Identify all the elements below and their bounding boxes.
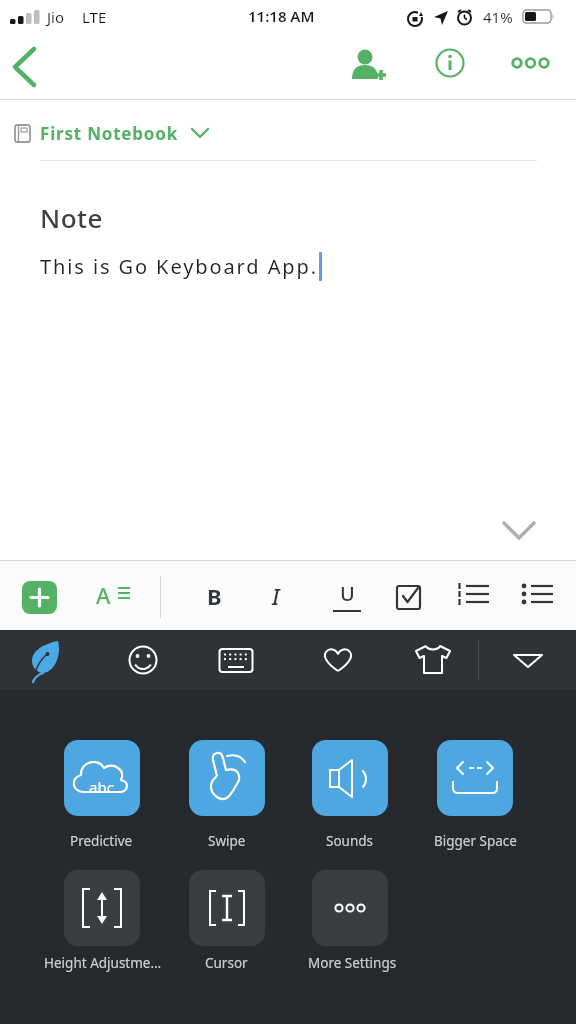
staticText: Predictive [70, 832, 133, 850]
button[interactable]: B [196, 576, 232, 616]
staticText: First Notebook [40, 122, 179, 145]
staticText: 41% [483, 7, 513, 27]
staticText: Swipe [208, 832, 246, 850]
button[interactable] [22, 581, 57, 614]
staticText: Note [40, 200, 103, 235]
staticText: I [272, 581, 280, 611]
button[interactable] [494, 511, 544, 551]
button[interactable]: A [92, 578, 136, 616]
button[interactable] [506, 646, 550, 674]
button[interactable] [312, 870, 388, 946]
button[interactable] [511, 52, 555, 74]
staticText: Jio [47, 7, 65, 27]
button[interactable] [312, 740, 388, 816]
button[interactable] [218, 644, 256, 676]
staticText: Sounds [326, 832, 374, 850]
button[interactable]: First Notebook [40, 122, 209, 145]
staticText: LTE [82, 7, 107, 27]
button[interactable] [31, 641, 65, 683]
button[interactable] [414, 644, 452, 676]
staticText: Bigger Space [434, 832, 517, 850]
button[interactable] [6, 43, 46, 93]
button[interactable] [437, 740, 513, 816]
staticText: Height Adjustme… [44, 954, 162, 972]
button[interactable]: I [258, 576, 294, 616]
staticText: A [96, 580, 111, 610]
button[interactable] [456, 578, 492, 614]
staticText: This is Go Keyboard App. [40, 253, 318, 280]
button[interactable]: U [328, 576, 366, 616]
staticText: U [340, 580, 355, 607]
staticText: abc [89, 777, 114, 797]
staticText: More Settings [308, 954, 397, 972]
button[interactable] [126, 644, 160, 676]
staticText: 11:18 AM [248, 6, 315, 26]
staticText: B [207, 581, 222, 611]
button[interactable] [64, 870, 140, 946]
staticText: Cursor [205, 954, 248, 972]
button[interactable] [394, 578, 426, 614]
button[interactable] [434, 47, 466, 79]
button[interactable] [520, 578, 556, 614]
button[interactable] [64, 740, 140, 816]
button[interactable] [189, 740, 265, 816]
button[interactable] [320, 644, 356, 676]
button[interactable] [348, 47, 390, 87]
button[interactable] [189, 870, 265, 946]
